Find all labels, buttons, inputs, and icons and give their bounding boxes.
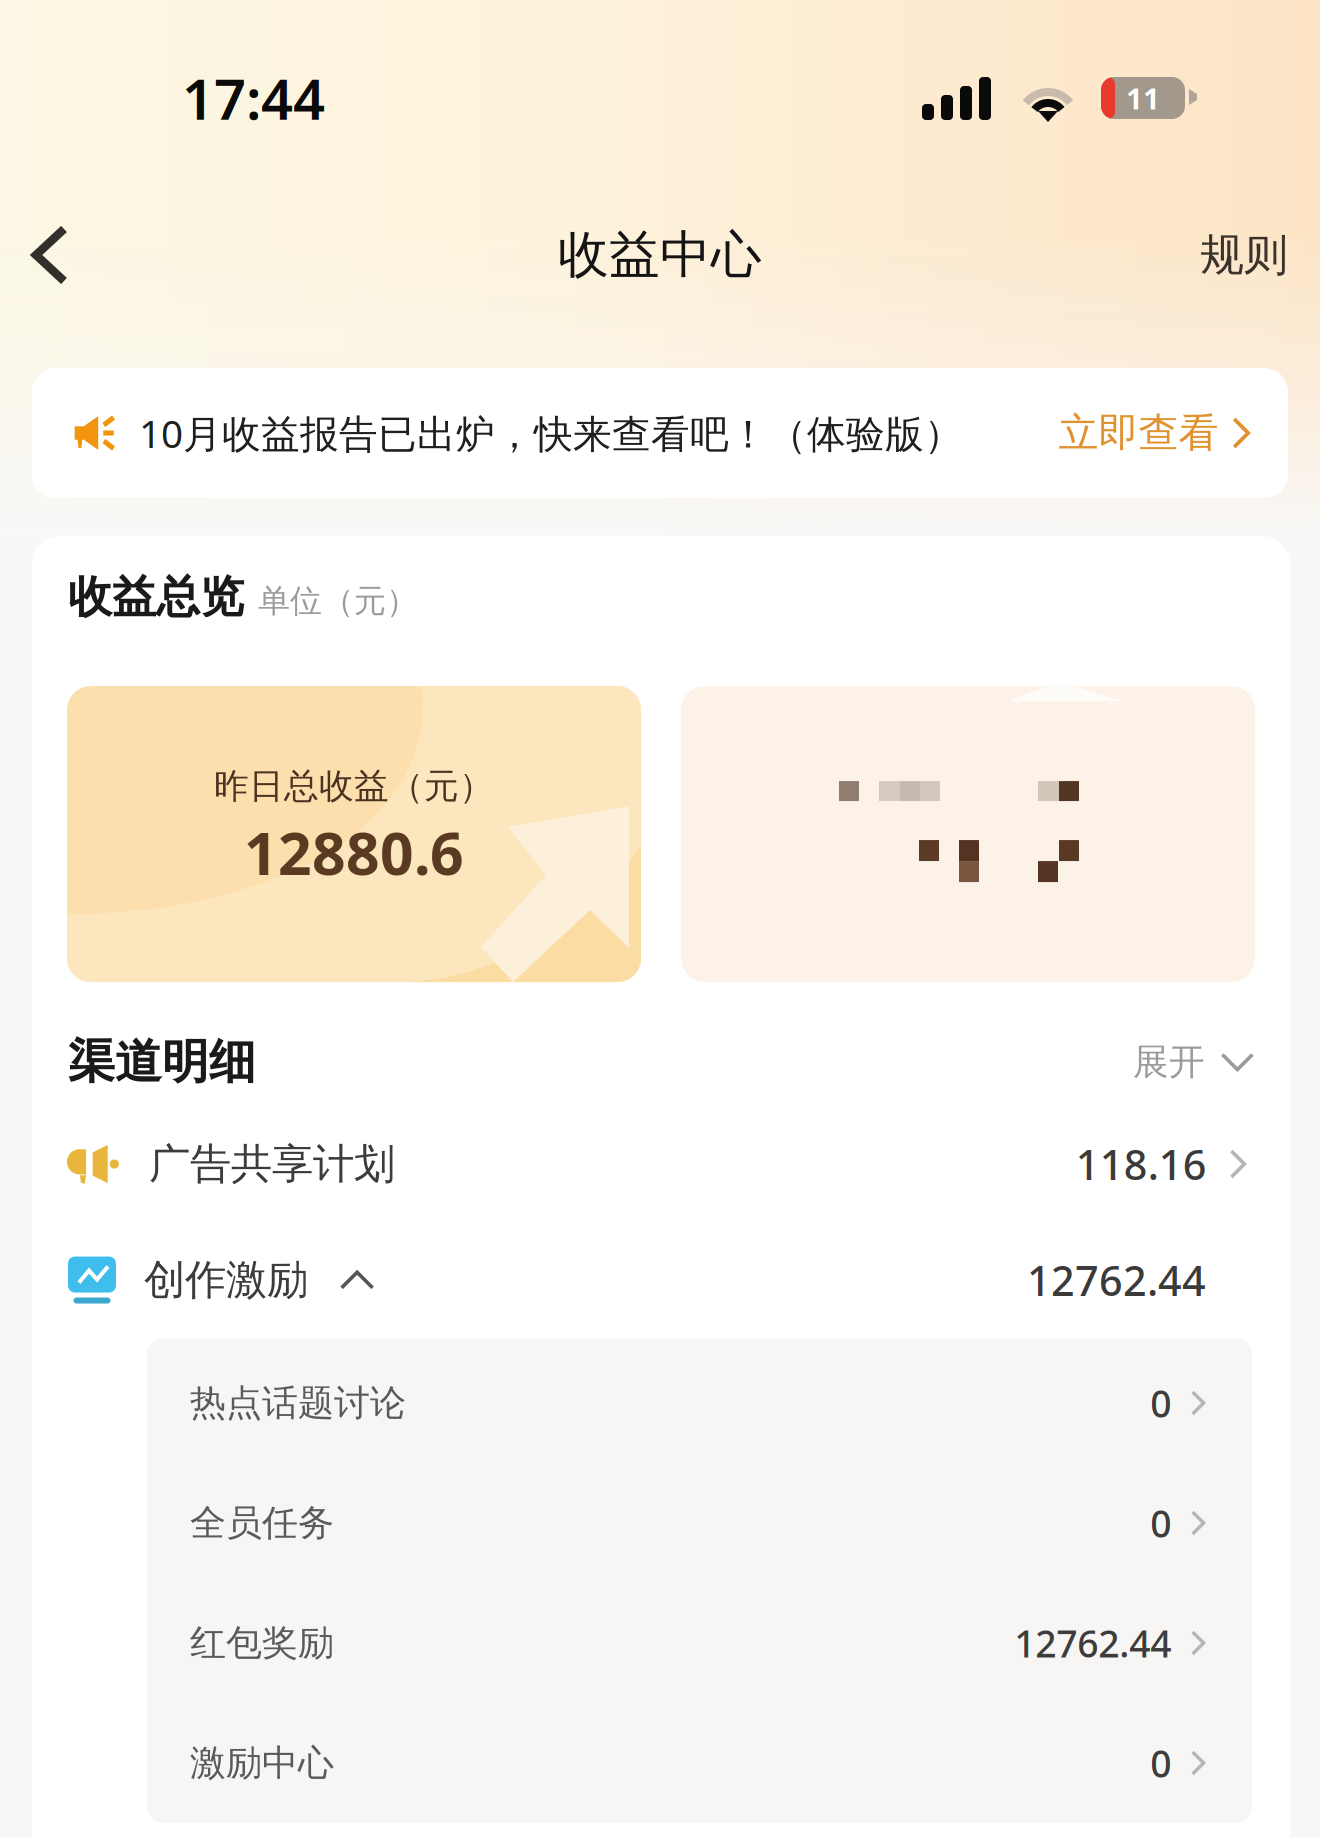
staticText: 广告共享计划 bbox=[149, 1139, 395, 1189]
staticText: 立即查看 bbox=[1058, 408, 1218, 457]
staticText: 12762.44 bbox=[1027, 1253, 1206, 1307]
staticText: 收益总览 bbox=[68, 570, 244, 624]
button[interactable]: 创作激励 bbox=[32, 1222, 1290, 1338]
staticText: 0 bbox=[1150, 1738, 1171, 1788]
staticText: 展开 bbox=[1133, 1040, 1205, 1084]
staticText: 17:44 bbox=[182, 61, 325, 135]
button[interactable]: 红包奖励 bbox=[147, 1583, 1252, 1703]
staticText: 激励中心 bbox=[190, 1741, 334, 1785]
staticText: 0 bbox=[1150, 1498, 1171, 1548]
staticText: 规则 bbox=[1200, 228, 1288, 282]
button[interactable]: 激励中心 bbox=[147, 1703, 1252, 1823]
staticText: 118.16 bbox=[1076, 1137, 1207, 1191]
button[interactable]: 热点话题讨论 bbox=[147, 1343, 1252, 1463]
staticText: 全员任务 bbox=[190, 1501, 334, 1545]
staticText: 0 bbox=[1150, 1378, 1171, 1428]
staticText: 12762.44 bbox=[1014, 1618, 1171, 1668]
staticText: 红包奖励 bbox=[190, 1621, 334, 1665]
button[interactable]: 规则 bbox=[1174, 200, 1320, 310]
staticText: 渠道明细 bbox=[68, 1033, 256, 1091]
button[interactable]: 展开 bbox=[1133, 1022, 1256, 1102]
staticText: 10月收益报告已出炉，快来查看吧！（体验版） bbox=[139, 407, 963, 459]
staticText: 创作激励 bbox=[144, 1255, 308, 1305]
staticText: 热点话题讨论 bbox=[190, 1381, 406, 1425]
staticText: 11 bbox=[1126, 78, 1160, 117]
button[interactable]: Back bbox=[0, 196, 96, 314]
staticText: 12880.6 bbox=[244, 813, 464, 891]
button[interactable]: 广告共享计划 bbox=[32, 1106, 1290, 1222]
staticText: 昨日总收益（元） bbox=[214, 765, 494, 807]
button[interactable]: 全员任务 bbox=[147, 1463, 1252, 1583]
staticText: 单位（元） bbox=[258, 581, 418, 621]
staticText: 收益中心 bbox=[558, 224, 762, 286]
button[interactable]: 10月收益报告已出炉，快来查看吧！（体验版） bbox=[32, 368, 1288, 498]
